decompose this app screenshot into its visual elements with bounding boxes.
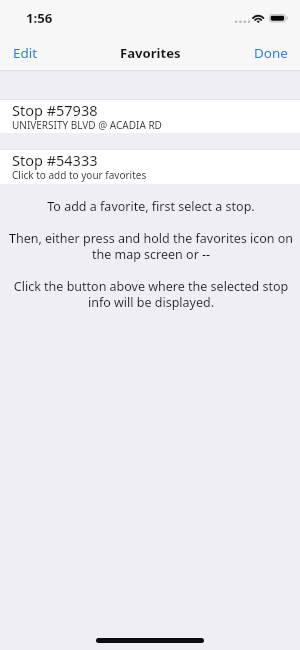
button[interactable]: Done <box>240 35 300 69</box>
staticText: Favorites <box>120 44 181 62</box>
staticText: Stop #57938 <box>12 100 98 120</box>
staticText: Done <box>254 44 288 62</box>
staticText: Click to add to your favorites <box>12 168 147 182</box>
button[interactable]: Stop #54333 <box>0 149 300 184</box>
staticText: Stop #54333 <box>12 150 98 170</box>
button[interactable]: Edit <box>0 35 51 69</box>
staticText: UNIVERSITY BLVD @ ACADIA RD <box>12 118 162 132</box>
staticText: To add a favorite, first select a stop. … <box>2 198 300 311</box>
staticText: 1:56 <box>26 9 53 27</box>
staticText: Edit <box>13 44 37 62</box>
button[interactable]: Stop #57938 <box>0 99 300 133</box>
